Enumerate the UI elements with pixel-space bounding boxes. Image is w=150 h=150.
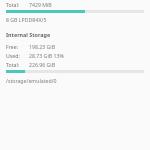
button[interactable]: 8 GB LPDDR4X/5 — [0, 16, 150, 23]
staticText: /storage/emulated/0 — [6, 77, 57, 84]
staticText: 28.73 GiB 13% — [29, 52, 64, 59]
button[interactable]: Total: — [0, 61, 150, 68]
button[interactable]: /storage/emulated/0 — [0, 77, 150, 84]
staticText: Total: — [6, 1, 20, 8]
button[interactable]: Total: — [0, 1, 150, 8]
staticText: 226.96 GiB — [29, 61, 56, 68]
button[interactable]: Internal Storage — [0, 31, 150, 38]
button[interactable]: Free: — [0, 43, 150, 50]
button[interactable]: Used: — [0, 52, 150, 59]
button[interactable]: RAM usage — [6, 10, 144, 13]
staticText: Total: — [6, 61, 20, 68]
staticText: Internal Storage — [6, 31, 51, 38]
button[interactable]: Internal storage usage — [6, 70, 144, 73]
staticText: Used: — [6, 52, 20, 59]
staticText: 7429 MiB — [29, 1, 52, 8]
staticText: Free: — [6, 43, 18, 50]
staticText: 198.23 GiB — [29, 43, 56, 50]
staticText: 8 GB LPDDR4X/5 — [6, 16, 47, 23]
